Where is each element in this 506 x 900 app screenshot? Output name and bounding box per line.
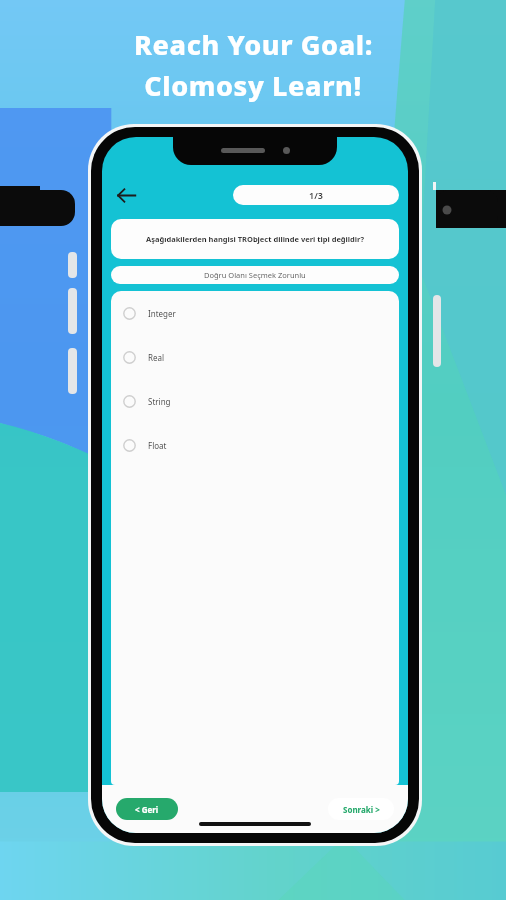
button[interactable]: Back [108, 180, 144, 210]
button[interactable]: Real [111, 335, 399, 379]
button[interactable]: Float [111, 423, 399, 467]
staticText: Integer [148, 308, 176, 319]
button[interactable]: Integer [111, 291, 399, 335]
staticText: Sonraki > [343, 804, 380, 815]
staticText: Real [148, 352, 165, 363]
staticText: Aşağıdakilerden hangisi TRObject dilinde… [146, 234, 364, 244]
staticText: Float [148, 440, 167, 451]
button[interactable]: Sonraki > [328, 798, 394, 820]
staticText: 1/3 [309, 189, 323, 201]
staticText: Clomosy Learn! [144, 67, 362, 104]
staticText: Doğru Olanı Seçmek Zorunlu [204, 270, 306, 280]
staticText: Reach Your Goal: [134, 26, 373, 63]
button[interactable]: 1/3 [233, 185, 399, 205]
staticText: String [148, 396, 171, 407]
button[interactable]: < Geri [116, 798, 178, 820]
staticText: < Geri [135, 804, 159, 815]
button[interactable]: String [111, 379, 399, 423]
